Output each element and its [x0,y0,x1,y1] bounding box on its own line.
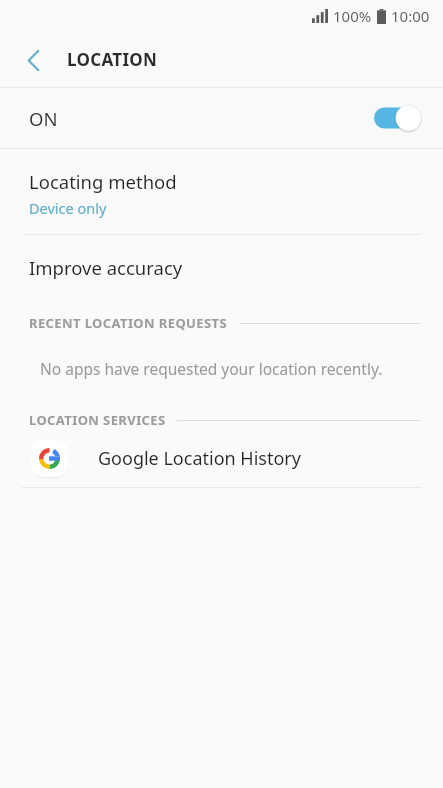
button[interactable]: Back [16,43,50,77]
staticText: 100% [333,6,372,26]
button[interactable]: Google Location History [0,429,443,487]
staticText: LOCATION [67,48,158,71]
staticText: Locating method [29,169,177,194]
staticText: Improve accuracy [29,255,183,280]
button[interactable]: Improve accuracy [0,235,443,300]
staticText: RECENT LOCATION REQUESTS [29,314,228,332]
staticText: ON [29,106,58,131]
button[interactable]: Locating method [0,149,443,234]
staticText: Google Location History [98,446,301,471]
staticText: Device only [29,198,107,218]
staticText: LOCATION SERVICES [29,411,166,429]
staticText: No apps have requested your location rec… [40,358,383,379]
button[interactable]: ON [0,88,443,148]
button[interactable]: Location on [374,103,422,133]
staticText: 10:00 [391,6,430,26]
